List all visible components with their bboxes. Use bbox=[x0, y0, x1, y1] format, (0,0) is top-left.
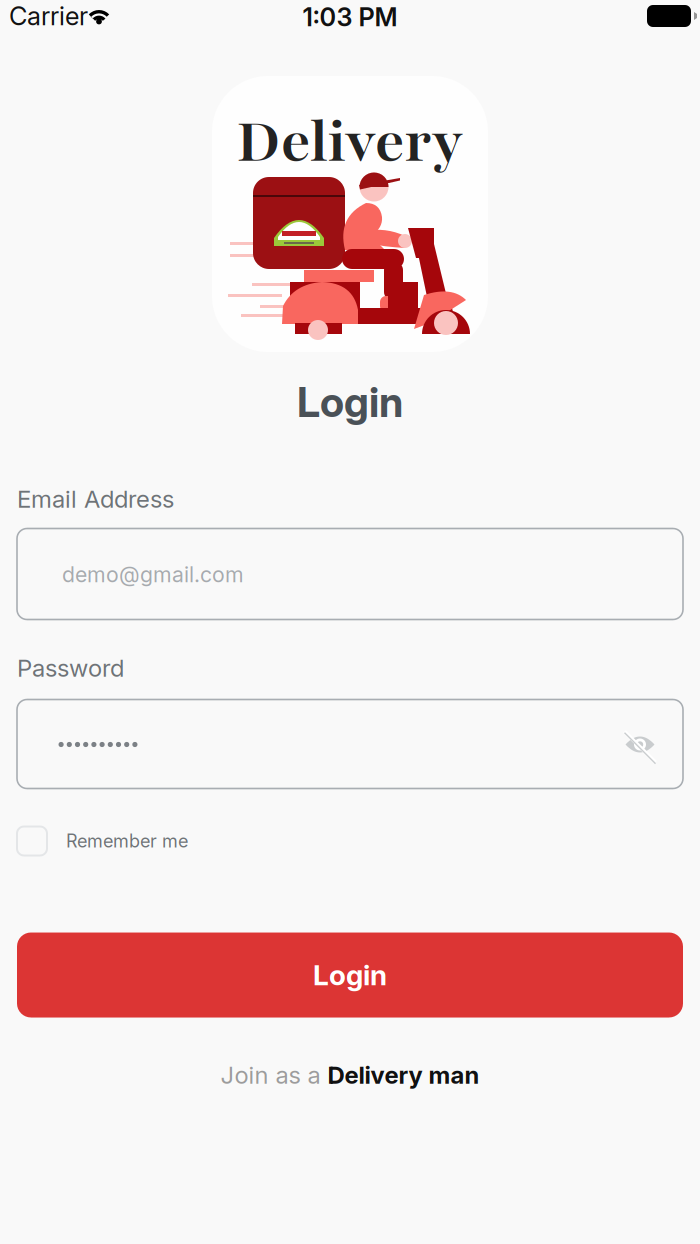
staticText: Join as a bbox=[220, 1060, 327, 1089]
staticText: Remember me bbox=[66, 830, 188, 852]
button[interactable]: Show password bbox=[609, 713, 671, 775]
button[interactable]: Join as a bbox=[220, 1053, 479, 1097]
staticText: 1:03 PM bbox=[302, 2, 397, 32]
staticText: Carrier bbox=[9, 1, 88, 31]
staticText: Password bbox=[17, 653, 124, 682]
staticText: Login bbox=[313, 958, 387, 992]
staticText: Delivery man bbox=[327, 1060, 479, 1089]
staticText: Email Address bbox=[17, 484, 174, 513]
staticText: Delivery bbox=[236, 103, 463, 181]
button[interactable]: Remember me bbox=[17, 819, 357, 863]
staticText: demo@gmail.com bbox=[62, 562, 244, 587]
staticText: Login bbox=[297, 377, 403, 427]
button[interactable]: Login bbox=[17, 932, 683, 1017]
